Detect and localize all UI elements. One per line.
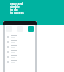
button[interactable] [7,59,17,64]
button[interactable] [7,54,17,59]
button[interactable] [28,26,34,32]
button[interactable] [7,49,17,54]
button[interactable] [7,34,17,39]
staticText: easy and [10,2,24,6]
button[interactable] [7,39,17,44]
staticText: to do [10,8,18,12]
staticText: to access [10,11,24,15]
button[interactable] [7,44,17,49]
staticText: simple [10,5,20,9]
